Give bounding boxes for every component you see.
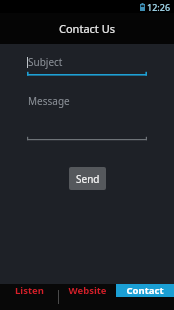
staticText: Contact Us [59,21,115,36]
staticText: Listen [15,284,44,297]
button[interactable]: Listen [0,284,58,297]
button[interactable]: Message [27,94,147,142]
staticText: Send [76,172,100,186]
button[interactable]: Subject [27,55,147,77]
staticText: Message [28,94,70,108]
staticText: 12:26 [147,1,171,13]
button[interactable]: Website [59,284,116,297]
button[interactable]: Contact [116,284,174,297]
button[interactable]: Send [69,167,106,190]
staticText: Subject [28,55,63,69]
staticText: Contact [126,284,164,297]
staticText: Website [68,284,107,297]
